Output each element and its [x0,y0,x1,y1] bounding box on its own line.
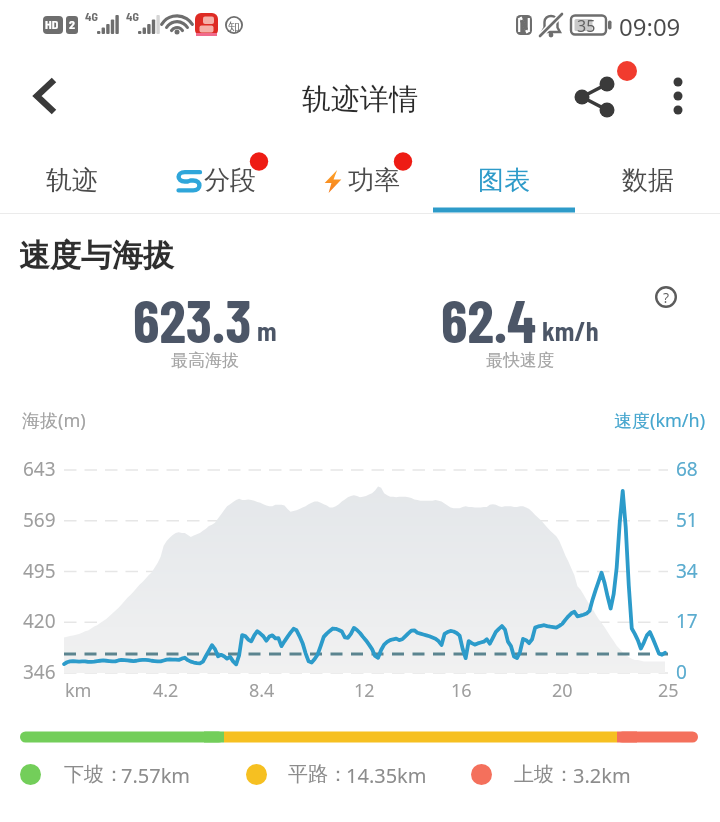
staticText: 4G [85,9,99,23]
staticText: 轨迹 [46,164,98,197]
staticText: 最高海拔 [171,350,239,371]
staticText: 68 [676,456,698,482]
staticText: 0 [676,659,687,685]
staticText: 17 [676,608,698,634]
staticText: 上坡： [514,762,574,787]
staticText: 12 [354,678,375,703]
staticText: 7.57km [121,762,191,789]
staticText: 分段 [204,164,256,197]
button[interactable]: 图表 [432,144,576,214]
staticText: 轨迹详情 [302,81,418,118]
staticText: 知 [228,19,240,34]
staticText: HD [45,17,59,31]
staticText: 图表 [478,164,530,197]
staticText: 下坡： [64,762,124,787]
button[interactable]: 数据 [576,144,720,214]
button[interactable]: 分段 [144,144,288,214]
staticText: 3.2km [573,762,631,789]
staticText: 4.2 [153,678,179,703]
staticText: 数据 [622,164,674,197]
staticText: 8.4 [249,678,275,703]
staticText: 16 [451,678,472,703]
staticText: 平路： [288,762,348,787]
button[interactable]: Help [655,286,677,308]
staticText: 495 [23,558,56,584]
staticText: 623.3 [133,283,252,355]
staticText: 速度与海拔 [19,236,174,275]
staticText: 功率 [348,164,400,197]
staticText: 速度(km/h) [614,408,706,433]
staticText: km/h [542,315,599,346]
button[interactable]: Back [8,48,80,144]
staticText: 14.35km [346,762,427,789]
staticText: 09:09 [619,10,681,43]
staticText: km [65,678,92,703]
button[interactable]: More options [648,48,708,144]
button[interactable]: 功率 [288,144,432,214]
staticText: 海拔(m) [22,408,86,433]
button[interactable]: 轨迹 [0,144,144,214]
staticText: 2 [69,17,75,31]
staticText: 35 [577,15,596,37]
staticText: 62.4 [441,283,537,355]
button[interactable]: Share [563,48,629,144]
staticText: 4G [126,9,140,23]
staticText: 346 [23,659,56,685]
staticText: 643 [23,456,56,482]
staticText: 20 [552,678,573,703]
staticText: m [257,315,277,346]
staticText: 25 [658,678,679,703]
staticText: 最快速度 [486,350,554,371]
staticText: 420 [23,608,56,634]
staticText: 34 [676,558,698,584]
staticText: 569 [23,507,56,533]
staticText: 51 [676,507,698,533]
staticText: ? [663,288,670,307]
